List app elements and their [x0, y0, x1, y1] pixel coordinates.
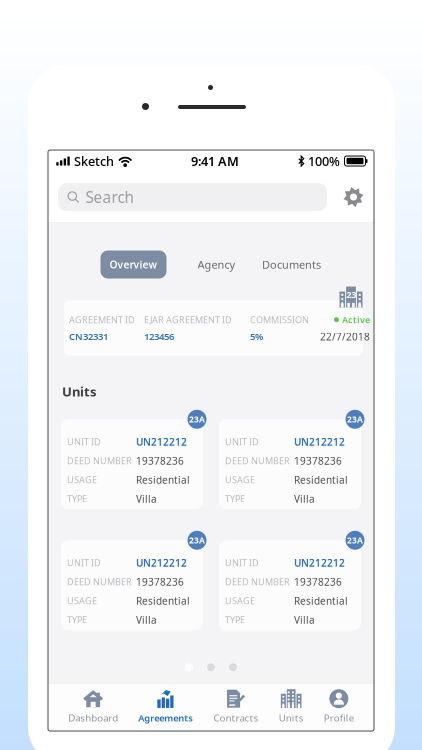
staticText: 22/7/2018	[320, 330, 370, 343]
staticText: TYPE	[67, 614, 87, 626]
button[interactable]: Overview	[100, 250, 166, 278]
button[interactable]: Units	[279, 682, 304, 732]
button[interactable]: Agreements	[138, 682, 193, 732]
staticText: Profile	[324, 711, 354, 724]
staticText: 100%	[305, 152, 343, 170]
staticText: TYPE	[225, 493, 245, 505]
staticText: Documents	[262, 257, 321, 272]
staticText: 19378236	[136, 575, 184, 589]
staticText: COMMISSION	[250, 313, 309, 326]
staticText: 23A	[189, 413, 205, 425]
staticText: TYPE	[67, 493, 87, 505]
staticText: Agreements	[138, 711, 193, 724]
staticText: Sketch	[71, 152, 114, 170]
staticText: AGREEMENT ID	[69, 313, 135, 326]
staticText: DEED NUMBER	[225, 455, 290, 467]
button[interactable]: Dashboard	[68, 682, 118, 732]
staticText: UNIT ID	[225, 557, 259, 569]
staticText: Villa	[294, 613, 315, 627]
staticText: UNIT ID	[67, 557, 101, 569]
staticText: Contracts	[213, 711, 258, 724]
staticText: DEED NUMBER	[67, 455, 132, 467]
staticText: 23A	[347, 413, 363, 425]
staticText: EJAR AGREEMENT ID	[144, 313, 232, 326]
button[interactable]: Contracts	[213, 682, 258, 732]
staticText: UNIT ID	[67, 436, 101, 448]
staticText: USAGE	[67, 595, 97, 607]
staticText: Active	[342, 313, 370, 326]
staticText: Villa	[136, 613, 157, 627]
staticText: Agency	[197, 257, 235, 272]
staticText: 23A	[189, 534, 205, 546]
staticText: 19378236	[294, 454, 342, 468]
staticText: USAGE	[225, 595, 255, 607]
staticText: 19378236	[136, 454, 184, 468]
staticText: USAGE	[67, 474, 97, 486]
staticText: Residential	[294, 473, 348, 487]
staticText: USAGE	[225, 474, 255, 486]
button[interactable]: Settings	[343, 186, 364, 207]
staticText: Villa	[136, 492, 157, 506]
staticText: 23A	[347, 534, 363, 546]
staticText: Residential	[294, 594, 348, 608]
staticText: UNIT ID	[225, 436, 259, 448]
staticText: 23	[346, 288, 356, 301]
staticText: Units	[62, 382, 97, 400]
staticText: TYPE	[225, 614, 245, 626]
staticText: UN212212	[136, 556, 187, 570]
staticText: Residential	[136, 473, 190, 487]
staticText: DEED NUMBER	[67, 576, 132, 588]
staticText: Overview	[109, 257, 157, 271]
staticText: DEED NUMBER	[225, 576, 290, 588]
button[interactable]: Agency	[194, 250, 238, 278]
staticText: UN212212	[136, 435, 187, 449]
button[interactable]: Documents	[261, 250, 321, 278]
staticText: 19378236	[294, 575, 342, 589]
staticText: Search	[85, 187, 133, 207]
staticText: 123456	[144, 330, 174, 343]
staticText: 5%	[250, 330, 263, 343]
staticText: Residential	[136, 594, 190, 608]
staticText: Dashboard	[68, 711, 118, 724]
staticText: UN212212	[294, 556, 345, 570]
staticText: CN32331	[69, 330, 108, 343]
staticText: Villa	[294, 492, 315, 506]
staticText: Units	[279, 711, 304, 724]
staticText: UN212212	[294, 435, 345, 449]
staticText: 9:41 AM	[191, 152, 239, 170]
button[interactable]: Profile	[324, 682, 354, 732]
